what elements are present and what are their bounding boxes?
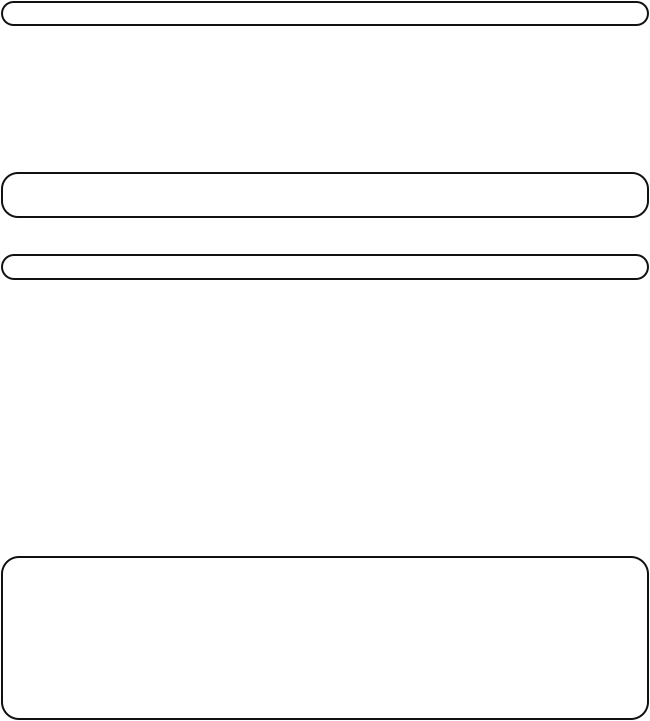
button[interactable]: Search field — [1, 172, 649, 218]
button[interactable]: Content card — [1, 556, 649, 720]
button[interactable]: Top bar — [1, 1, 649, 26]
button[interactable]: Selector — [1, 254, 649, 280]
